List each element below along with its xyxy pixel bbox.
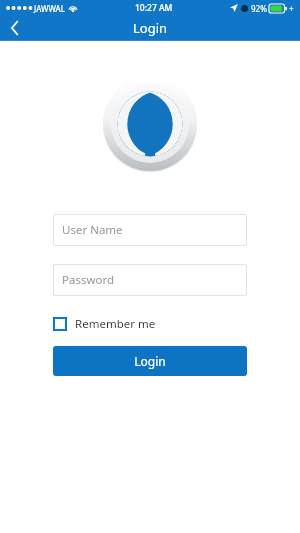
staticText: + (289, 3, 294, 14)
staticText: Remember me (75, 316, 156, 332)
button[interactable]: Remember me (53, 314, 156, 334)
button[interactable]: Back (0, 16, 30, 40)
staticText: Login (133, 19, 168, 37)
staticText: 92% (251, 3, 267, 14)
staticText: Password (62, 272, 115, 288)
button[interactable]: User Name (53, 214, 247, 246)
staticText: 10:27 AM (135, 2, 173, 14)
staticText: User Name (62, 222, 123, 238)
button[interactable]: Password (53, 264, 247, 296)
button[interactable]: Login (53, 346, 247, 376)
staticText: Login (134, 353, 166, 369)
staticText: JAWWAL (34, 3, 65, 14)
